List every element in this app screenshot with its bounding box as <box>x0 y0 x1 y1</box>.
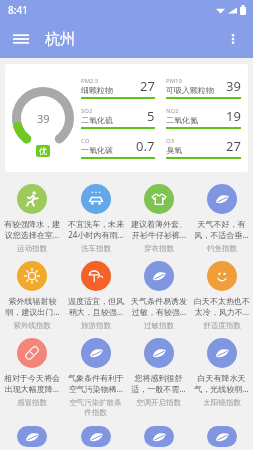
staticText: CO <box>81 137 90 145</box>
staticText: 建议着薄外套、 开衫牛仔衫裤… <box>131 219 187 240</box>
staticText: 太阳镜指数 <box>203 398 241 407</box>
staticText: 27 <box>226 137 241 155</box>
staticText: 27 <box>140 77 155 95</box>
button[interactable]: 不宜洗车，未来 24小时内有雨… <box>64 179 127 256</box>
staticText: 5 <box>147 107 155 125</box>
button[interactable]: 有较强降水，建 议您选择在室… <box>0 179 64 256</box>
button[interactable]: 温度适宜，但风 稍大，且较强… <box>64 256 127 333</box>
button[interactable]: 天气条件易诱发 过敏，有较强… <box>127 256 190 333</box>
staticText: 旅游指数 <box>81 321 111 330</box>
button[interactable]: PM2.5 <box>81 77 155 99</box>
staticText: 舒适度指数 <box>203 321 241 330</box>
staticText: 二氧化氮 <box>166 115 198 125</box>
staticText: 0.7 <box>136 137 155 155</box>
button[interactable]: 气象条件有利于 空气污染物稀… <box>64 333 127 421</box>
button[interactable]: 建议着薄外套、 开衫牛仔衫裤… <box>127 179 190 256</box>
button[interactable]: SO2 <box>81 107 155 129</box>
staticText: 一氧化碳 <box>81 145 113 155</box>
staticText: O3 <box>166 137 175 145</box>
button[interactable]: 紫外线辐射较 弱，建议出门… <box>0 256 64 333</box>
button[interactable]: PM10 <box>166 77 241 99</box>
button[interactable]: Open navigation menu <box>7 25 35 53</box>
button[interactable]: 相对于今天将会 出现大幅度降… <box>0 333 64 410</box>
button[interactable]: More options <box>219 25 247 53</box>
button[interactable]: 白天有降水天 气，光线较弱… <box>190 333 253 410</box>
staticText: 紫外线辐射较 弱，建议出门… <box>5 296 60 317</box>
staticText: 相对于今天将会 出现大幅度降… <box>4 373 60 394</box>
staticText: 有较强降水，建 议您选择在室… <box>4 219 60 240</box>
staticText: NO2 <box>166 107 179 115</box>
staticText: PM2.5 <box>81 77 99 85</box>
staticText: 感冒指数 <box>17 398 47 407</box>
staticText: 穿衣指数 <box>144 244 174 253</box>
staticText: 空调开启指数 <box>136 398 181 407</box>
button[interactable] <box>64 421 127 450</box>
button[interactable] <box>127 421 190 450</box>
staticText: 空气污染扩散条 件指数 <box>69 398 122 418</box>
button[interactable]: 天气不好，有 风，不适合垂… <box>190 179 253 256</box>
staticText: 臭氧 <box>166 145 182 155</box>
staticText: 天气条件易诱发 过敏，有较强… <box>131 296 187 317</box>
staticText: 白天有降水天 气，光线较弱… <box>194 373 249 394</box>
staticText: 气象条件有利于 空气污染物稀… <box>68 373 124 394</box>
staticText: 紫外线指数 <box>13 321 51 330</box>
button[interactable]: O3 <box>166 137 241 159</box>
staticText: 运动指数 <box>17 244 47 253</box>
staticText: PM10 <box>166 77 182 85</box>
staticText: 优 <box>39 146 47 156</box>
button[interactable]: NO2 <box>166 107 241 129</box>
staticText: SO2 <box>81 107 93 115</box>
staticText: 39 <box>37 111 50 126</box>
staticText: 二氧化硫 <box>81 115 113 125</box>
button[interactable] <box>0 421 64 450</box>
staticText: 洗车指数 <box>81 244 111 253</box>
button[interactable]: 您将感到很舒 适，一般不需… <box>127 333 190 410</box>
button[interactable]: CO <box>81 137 155 159</box>
staticText: 天气不好，有 风，不适合垂… <box>194 219 249 240</box>
staticText: 杭州 <box>45 30 75 49</box>
staticText: 19 <box>226 107 241 125</box>
staticText: 不宜洗车，未来 24小时内有雨… <box>68 219 124 240</box>
staticText: 您将感到很舒 适，一般不需… <box>131 373 186 394</box>
staticText: 细颗粒物 <box>81 85 113 95</box>
button[interactable]: 白天不太热也不 太冷，风力不… <box>190 256 253 333</box>
button[interactable] <box>190 421 253 450</box>
staticText: 温度适宜，但风 稍大，且较强… <box>68 296 124 317</box>
staticText: 白天不太热也不 太冷，风力不… <box>194 296 250 317</box>
staticText: 过敏指数 <box>144 321 174 330</box>
button[interactable]: 39 <box>5 64 248 172</box>
staticText: 39 <box>226 77 241 95</box>
staticText: 钓鱼指数 <box>207 244 237 253</box>
staticText: 可吸入颗粒物 <box>166 85 214 95</box>
staticText: 8:41 <box>8 3 28 17</box>
